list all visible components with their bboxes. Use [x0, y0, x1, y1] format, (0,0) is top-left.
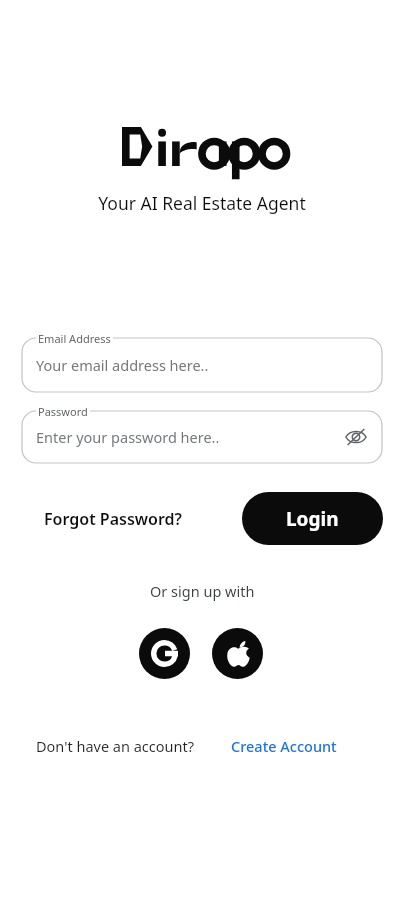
button[interactable]: Password	[22, 411, 382, 463]
staticText: Your AI Real Estate Agent	[98, 191, 306, 215]
button[interactable]: Email Address	[22, 338, 382, 392]
button[interactable]: Sign up with Google	[139, 628, 190, 679]
staticText: Create Account	[231, 736, 337, 756]
staticText: Don't have an account?	[36, 736, 194, 756]
staticText: Enter your password here..	[36, 427, 220, 447]
staticText: Login	[286, 506, 339, 532]
staticText: Your email address here..	[36, 355, 209, 375]
staticText: Or sign up with	[150, 581, 255, 601]
button[interactable]: Create Account	[229, 732, 339, 760]
staticText: Forgot Password?	[44, 508, 182, 530]
button[interactable]: Sign up with Apple	[212, 628, 263, 679]
button[interactable]: Forgot Password?	[36, 502, 190, 536]
button[interactable]: Login	[242, 492, 383, 545]
staticText: Email Address	[38, 331, 111, 346]
staticText: Password	[38, 404, 88, 419]
button[interactable]: Show password	[342, 423, 370, 451]
